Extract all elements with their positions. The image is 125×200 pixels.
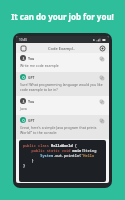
staticText: You bbox=[28, 99, 35, 104]
button[interactable]: Copy message bbox=[98, 74, 105, 81]
staticText: Sure! What programming language would yo… bbox=[20, 82, 105, 87]
staticText: Write me code example bbox=[20, 63, 59, 68]
staticText: It can do your job for you! bbox=[11, 11, 114, 22]
button[interactable]: Copy message bbox=[98, 98, 105, 105]
button[interactable]: Copy message bbox=[98, 55, 105, 62]
staticText: public static void main(String bbox=[23, 148, 97, 153]
button[interactable]: Settings bbox=[98, 44, 106, 52]
staticText: public class HelloWorld { bbox=[23, 143, 77, 148]
button[interactable]: New chat bbox=[19, 44, 27, 52]
staticText: GPT bbox=[28, 75, 35, 80]
staticText: } bbox=[23, 163, 26, 168]
staticText: System.out.println("Hello bbox=[23, 153, 95, 158]
button[interactable]: Copy message bbox=[98, 117, 105, 124]
staticText: GPT bbox=[28, 118, 35, 123]
staticText: You bbox=[28, 56, 35, 61]
staticText: Code Exampl.. bbox=[48, 46, 76, 51]
staticText: Great, here's a simple Java program that… bbox=[20, 125, 105, 130]
staticText: World!" to the console: bbox=[20, 130, 58, 135]
staticText: 10:45 bbox=[19, 38, 28, 42]
staticText: } bbox=[23, 158, 34, 163]
staticText: code example to be in? bbox=[20, 87, 58, 92]
staticText: Java bbox=[20, 106, 27, 111]
